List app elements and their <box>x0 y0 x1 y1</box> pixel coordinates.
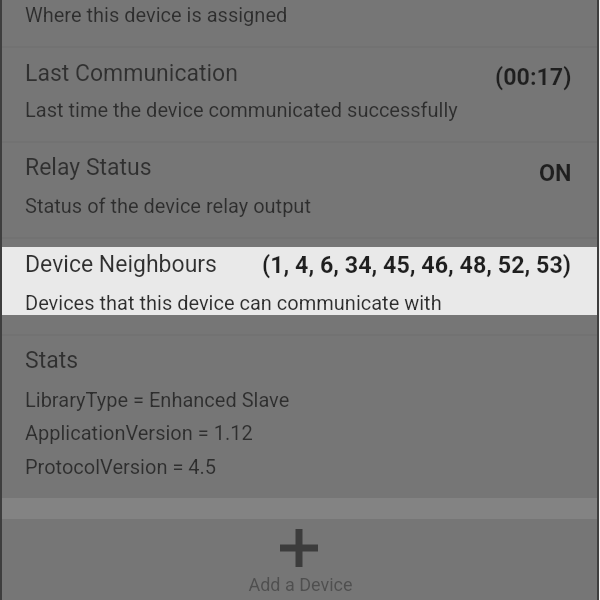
staticText: Device Neighbours <box>25 251 217 278</box>
button[interactable]: Where this device is assigned <box>0 0 600 46</box>
other: Add a Device <box>274 524 324 572</box>
staticText: Devices that this device can communicate… <box>25 291 442 314</box>
button[interactable]: Relay Status <box>0 143 600 237</box>
button[interactable]: Stats <box>0 336 600 496</box>
staticText: LibraryType = Enhanced Slave <box>25 388 290 411</box>
button[interactable]: Device Neighbours <box>0 239 600 334</box>
staticText: ApplicationVersion = 1.12 <box>25 421 253 444</box>
staticText: Stats <box>25 347 79 374</box>
staticText: (1, 4, 6, 34, 45, 46, 48, 52, 53) <box>262 251 572 278</box>
staticText: ON <box>539 159 572 186</box>
staticText: (00:17) <box>495 63 572 90</box>
staticText: ProtocolVersion = 4.5 <box>25 455 217 478</box>
staticText: Last time the device communicated succes… <box>25 98 458 121</box>
staticText: Last Communication <box>25 60 238 87</box>
staticText: Status of the device relay output <box>25 194 311 217</box>
button[interactable]: Add a Device <box>0 519 600 600</box>
staticText: Relay Status <box>25 154 152 181</box>
staticText: Where this device is assigned <box>25 3 288 26</box>
staticText: Add a Device <box>248 574 353 595</box>
button[interactable]: Last Communication <box>0 48 600 141</box>
